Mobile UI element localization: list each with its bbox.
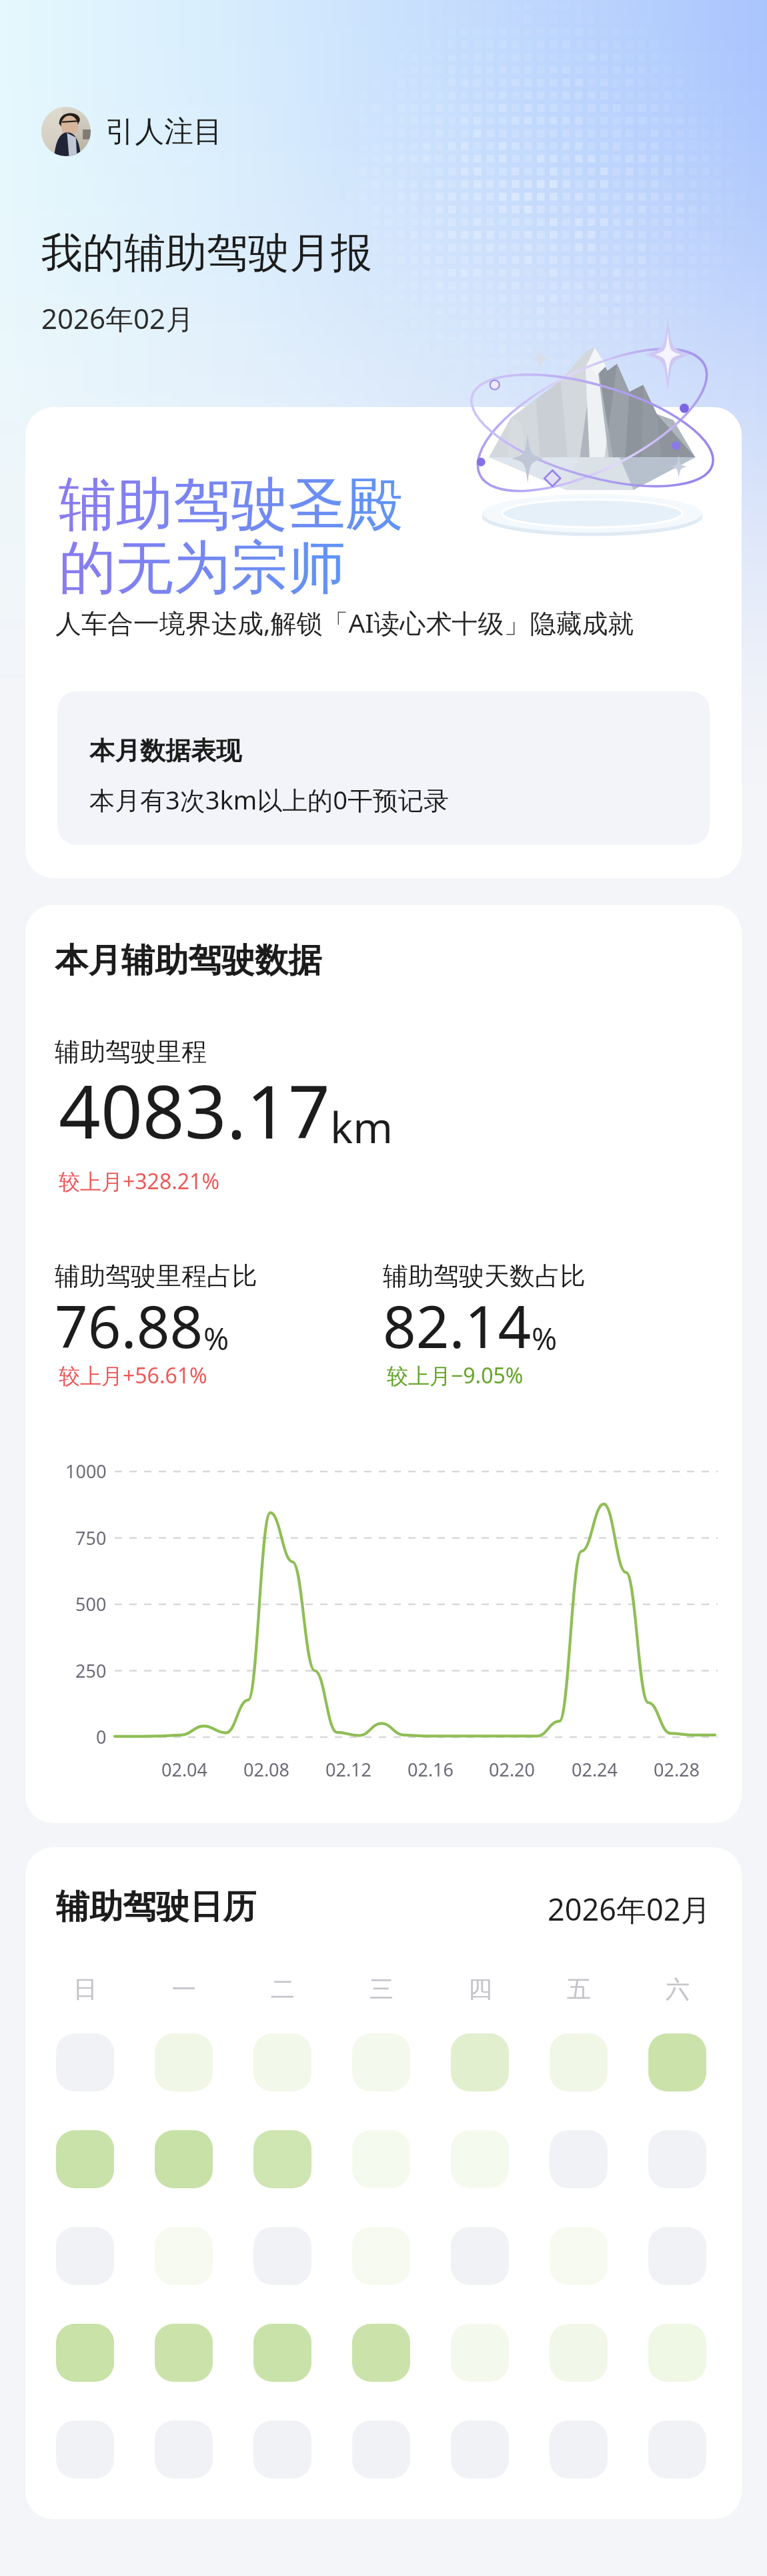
staticText: 02.16: [408, 1757, 454, 1782]
button[interactable]: [56, 2130, 114, 2188]
button[interactable]: [648, 2033, 706, 2091]
staticText: 较上月+56.61%: [59, 1361, 207, 1390]
staticText: 本月有3次3km以上的0干预记录: [89, 782, 450, 817]
button[interactable]: [253, 2227, 311, 2285]
staticText: 02.20: [489, 1757, 536, 1782]
staticText: 的无为宗师: [59, 532, 345, 604]
button[interactable]: [352, 2324, 410, 2382]
button[interactable]: [352, 2227, 410, 2285]
button[interactable]: [253, 2421, 311, 2479]
staticText: 02.08: [243, 1757, 290, 1782]
button[interactable]: [155, 2421, 213, 2479]
staticText: 人车合一境界达成,解锁「AI读心术十级」隐藏成就: [55, 605, 634, 640]
staticText: 辅助驾驶圣殿: [59, 468, 403, 541]
staticText: 1000: [65, 1459, 107, 1484]
button[interactable]: [550, 2421, 608, 2479]
staticText: %: [203, 1317, 229, 1359]
button[interactable]: [352, 2033, 410, 2091]
button[interactable]: [550, 2130, 608, 2188]
staticText: 辅助驾驶日历: [56, 1886, 256, 1928]
button[interactable]: [550, 2324, 608, 2382]
staticText: 本月辅助驾驶数据: [55, 940, 321, 982]
staticText: 我的辅助驾驶月报: [41, 227, 372, 279]
staticText: 02.24: [572, 1757, 618, 1782]
staticText: 750: [75, 1526, 107, 1550]
staticText: 02.04: [161, 1757, 208, 1782]
staticText: 500: [75, 1592, 107, 1616]
button[interactable]: [56, 2033, 114, 2091]
staticText: 02.28: [654, 1757, 700, 1782]
staticText: 82.14: [383, 1286, 532, 1365]
button[interactable]: [352, 2421, 410, 2479]
button[interactable]: [56, 2324, 114, 2382]
staticText: 辅助驾驶里程占比: [55, 1260, 257, 1292]
button[interactable]: [253, 2033, 311, 2091]
staticText: 250: [75, 1658, 107, 1683]
staticText: 引人注目: [105, 113, 223, 150]
staticText: 较上月−9.05%: [387, 1361, 524, 1390]
button[interactable]: [550, 2227, 608, 2285]
button[interactable]: [41, 107, 91, 156]
button[interactable]: [451, 2324, 509, 2382]
button[interactable]: [253, 2324, 311, 2382]
button[interactable]: [451, 2227, 509, 2285]
button[interactable]: [648, 2130, 706, 2188]
staticText: %: [532, 1317, 558, 1359]
staticText: 76.88: [55, 1286, 203, 1365]
staticText: 辅助驾驶天数占比: [383, 1260, 586, 1292]
button[interactable]: [253, 2130, 311, 2188]
staticText: 一: [172, 1974, 196, 2004]
button[interactable]: [155, 2324, 213, 2382]
button[interactable]: [155, 2227, 213, 2285]
button[interactable]: [648, 2324, 706, 2382]
staticText: km: [330, 1098, 394, 1156]
staticText: 六: [666, 1974, 690, 2004]
staticText: 二: [271, 1974, 295, 2004]
button[interactable]: [155, 2130, 213, 2188]
staticText: 4083.17: [59, 1060, 330, 1160]
button[interactable]: 引人注目: [41, 107, 223, 156]
button[interactable]: [451, 2421, 509, 2479]
button[interactable]: [550, 2033, 608, 2091]
button[interactable]: [451, 2033, 509, 2091]
staticText: 四: [468, 1974, 492, 2004]
button[interactable]: [352, 2130, 410, 2188]
staticText: 2026年02月: [548, 1889, 711, 1929]
button[interactable]: [56, 2227, 114, 2285]
button[interactable]: [451, 2130, 509, 2188]
staticText: 三: [369, 1974, 394, 2004]
staticText: 2026年02月: [41, 299, 194, 337]
staticText: 本月数据表现: [89, 735, 241, 767]
button[interactable]: [648, 2227, 706, 2285]
staticText: 02.12: [325, 1757, 372, 1782]
staticText: 0: [96, 1724, 107, 1749]
staticText: 日: [73, 1974, 97, 2004]
button[interactable]: [56, 2421, 114, 2479]
staticText: 较上月+328.21%: [59, 1167, 219, 1196]
staticText: 辅助驾驶里程: [55, 1036, 207, 1068]
staticText: 五: [567, 1974, 591, 2004]
button[interactable]: [648, 2421, 706, 2479]
button[interactable]: [155, 2033, 213, 2091]
